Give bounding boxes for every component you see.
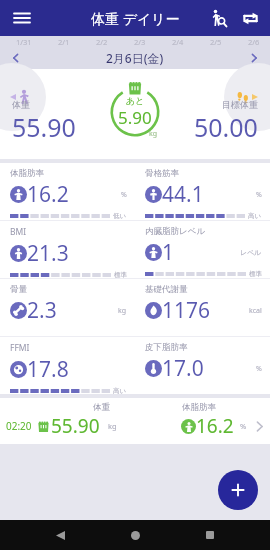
button[interactable]: 2/4 (172, 37, 184, 47)
staticText: あと (126, 95, 145, 106)
button[interactable]: 2/5 (210, 37, 222, 47)
staticText: 55.90 (51, 413, 100, 439)
button[interactable]: Activity (0, 63, 46, 131)
button[interactable]: 2月6日(金) (106, 50, 164, 66)
staticText: % (121, 190, 127, 200)
staticText: 骨量 (10, 284, 27, 295)
staticText: % (256, 190, 262, 200)
button[interactable]: あと (106, 83, 164, 141)
staticText: 皮下脂肪率 (145, 342, 188, 353)
staticText: kcal (249, 306, 262, 316)
button[interactable]: 2/2 (96, 37, 108, 47)
button[interactable]: 2/3 (134, 37, 146, 47)
staticText: 17.0 (162, 354, 204, 383)
staticText: 体重 (12, 99, 30, 110)
staticText: 16.2 (27, 180, 69, 209)
staticText: 44.1 (162, 180, 204, 209)
staticText: 体重 (93, 402, 110, 413)
staticText: 体脂肪率 (182, 402, 216, 413)
staticText: BMI (10, 226, 27, 238)
button[interactable]: FFMI (0, 337, 135, 394)
button[interactable]: 目標体重 (194, 99, 258, 144)
button[interactable]: Next day (244, 48, 264, 68)
button[interactable]: BMI (0, 221, 135, 278)
staticText: 21.3 (27, 239, 69, 268)
button[interactable]: 2/6 (248, 37, 260, 47)
staticText: kg (149, 129, 158, 139)
button[interactable]: 基礎代謝量 (135, 279, 270, 336)
button[interactable]: 体脂肪率 (0, 163, 135, 220)
staticText: 02:20 (6, 419, 32, 433)
button[interactable]: 骨量 (0, 279, 135, 336)
staticText: 低い (113, 212, 127, 220)
button[interactable]: Sync (236, 4, 264, 32)
staticText: kg (118, 306, 127, 316)
button[interactable]: 体重 (12, 99, 76, 144)
button[interactable]: 2/1 (58, 37, 70, 47)
button[interactable]: 1/31 (16, 37, 32, 47)
staticText: 体脂肪率 (10, 168, 44, 179)
button[interactable]: 皮下脂肪率 (135, 337, 270, 394)
button[interactable]: Menu (8, 4, 36, 32)
staticText: 17.8 (27, 355, 69, 384)
button[interactable]: Back (48, 523, 72, 547)
staticText: 目標体重 (222, 99, 258, 110)
staticText: % (256, 364, 262, 374)
staticText: レベル (240, 248, 262, 257)
staticText: kg (108, 421, 117, 431)
staticText: 基礎代謝量 (145, 284, 188, 295)
button[interactable]: Previous day (6, 48, 26, 68)
staticText: 50.00 (194, 110, 258, 144)
button[interactable]: Steps (224, 63, 270, 131)
button[interactable]: Recents (198, 523, 222, 547)
button[interactable]: Home (123, 523, 147, 547)
staticText: 1 (162, 238, 175, 267)
staticText: 2.3 (27, 296, 57, 325)
staticText: 5.90 (118, 106, 152, 129)
staticText: 内臓脂肪レベル (145, 226, 206, 237)
staticText: 標準 (114, 271, 127, 278)
button[interactable]: Add record (218, 470, 258, 510)
staticText: 体重 デイリー (91, 9, 180, 28)
button[interactable]: 内臓脂肪レベル (135, 221, 270, 278)
button[interactable]: 骨格筋率 (135, 163, 270, 220)
staticText: 骨格筋率 (145, 168, 179, 179)
staticText: 16.2 (196, 413, 234, 439)
staticText: % (240, 421, 247, 431)
staticText: FFMI (10, 342, 30, 354)
staticText: 高い (248, 212, 262, 220)
staticText: 1176 (162, 296, 211, 325)
button[interactable]: 体重 (0, 398, 270, 444)
button[interactable]: Search person (204, 4, 232, 32)
staticText: 55.90 (12, 110, 76, 144)
staticText: 標準 (249, 270, 262, 278)
staticText: 高い (113, 387, 127, 394)
